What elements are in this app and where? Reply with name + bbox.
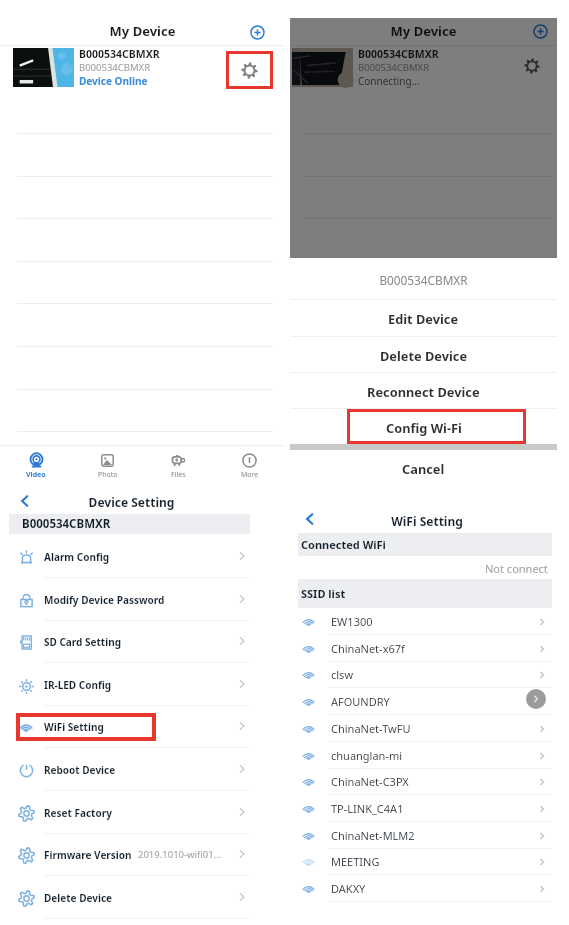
staticText: Reconnect Device xyxy=(367,383,480,400)
staticText: WiFi Setting xyxy=(44,720,104,734)
button[interactable]: Reboot Device xyxy=(0,748,285,791)
staticText: Alarm Config xyxy=(44,550,110,564)
staticText: Firmware Version xyxy=(44,848,132,862)
button[interactable]: ChinaNet-x67f xyxy=(285,635,569,662)
staticText: Files xyxy=(171,470,186,480)
button[interactable]: chuanglan-mi xyxy=(285,742,569,769)
staticText: IR-LED Config xyxy=(44,678,112,692)
button[interactable]: Reconnect Device xyxy=(290,373,557,409)
button[interactable]: Cancel xyxy=(290,450,557,486)
staticText: B000534CBMXR xyxy=(358,47,439,61)
button[interactable]: Photo xyxy=(72,446,143,486)
staticText: SSID list xyxy=(301,586,346,601)
button[interactable]: More xyxy=(214,446,285,486)
button[interactable]: Config Wi-Fi xyxy=(290,409,557,445)
staticText: TP-LINK_C4A1 xyxy=(331,801,404,816)
button[interactable]: Delete Device xyxy=(0,876,285,919)
staticText: MEETING xyxy=(331,854,380,869)
button[interactable]: MEETING xyxy=(285,848,569,875)
button[interactable]: Delete Device xyxy=(290,337,557,373)
button[interactable]: ChinaNet-MLM2 xyxy=(285,822,569,849)
staticText: More xyxy=(241,470,259,480)
button[interactable]: Device settings xyxy=(226,51,273,89)
staticText: ChinaNet-C3PX xyxy=(331,774,409,789)
button[interactable]: Files xyxy=(143,446,214,486)
staticText: B000534CBMXR xyxy=(79,61,151,74)
staticText: My Device xyxy=(290,22,557,40)
staticText: B000534CBMXR xyxy=(290,272,557,288)
button[interactable]: Video xyxy=(0,446,72,486)
button[interactable]: Add device xyxy=(247,22,267,42)
staticText: Delete Device xyxy=(380,347,468,364)
button[interactable]: Back xyxy=(16,492,33,509)
button[interactable]: AFOUNDRY xyxy=(285,688,569,715)
staticText: My Device xyxy=(0,22,285,40)
staticText: EW1300 xyxy=(331,614,373,629)
button[interactable]: Back xyxy=(302,511,318,527)
staticText: Photo xyxy=(98,470,118,480)
button[interactable]: WiFi Setting xyxy=(0,705,285,748)
staticText: Device Setting xyxy=(11,494,252,510)
button[interactable]: TP-LINK_C4A1 xyxy=(285,795,569,822)
staticText: Connecting... xyxy=(358,74,420,88)
staticText: WiFi Setting xyxy=(300,513,554,529)
staticText: 2019.1010-wifi01... xyxy=(138,848,222,861)
staticText: clsw xyxy=(331,667,354,682)
staticText: B000534CBMXR xyxy=(79,47,160,61)
button[interactable]: IR-LED Config xyxy=(0,663,285,706)
staticText: chuanglan-mi xyxy=(331,748,403,763)
button[interactable]: Edit Device xyxy=(290,300,557,336)
staticText: Device Online xyxy=(79,74,148,88)
staticText: Reboot Device xyxy=(44,763,116,777)
staticText: SD Card Setting xyxy=(44,635,121,649)
staticText: B000534CBMXR xyxy=(22,516,111,532)
button[interactable]: DAKXY xyxy=(285,875,569,902)
staticText: AFOUNDRY xyxy=(331,694,390,709)
button[interactable]: SD Card Setting xyxy=(0,620,285,663)
button[interactable]: ChinaNet-C3PX xyxy=(285,768,569,795)
staticText: ChinaNet-x67f xyxy=(331,641,405,656)
staticText: ChinaNet-TwFU xyxy=(331,721,411,736)
staticText: Reset Factory xyxy=(44,806,112,820)
button[interactable]: Reset Factory xyxy=(0,791,285,834)
staticText: DAKXY xyxy=(331,881,366,896)
button[interactable]: Firmware Version xyxy=(0,833,285,876)
staticText: B000534CBMXR xyxy=(358,61,430,74)
staticText: Video xyxy=(26,470,46,480)
button[interactable]: clsw xyxy=(285,661,569,688)
button[interactable]: EW1300 xyxy=(285,608,569,635)
staticText: Delete Device xyxy=(44,891,113,905)
staticText: Modify Device Password xyxy=(44,593,165,607)
staticText: Edit Device xyxy=(388,310,459,327)
staticText: Config Wi-Fi xyxy=(386,419,462,436)
staticText: Cancel xyxy=(402,460,445,477)
staticText: ChinaNet-MLM2 xyxy=(331,828,415,843)
button[interactable]: B000534CBMXR xyxy=(0,46,285,89)
button[interactable]: Alarm Config xyxy=(0,535,285,578)
button[interactable]: Modify Device Password xyxy=(0,578,285,621)
button[interactable]: ChinaNet-TwFU xyxy=(285,715,569,742)
staticText: Not connect xyxy=(485,561,548,576)
staticText: Connected WiFi xyxy=(301,537,386,552)
